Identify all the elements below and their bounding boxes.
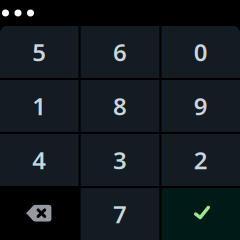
button[interactable]: 4 [0,134,79,186]
button[interactable]: 2 [161,134,240,186]
button[interactable]: 9 [161,80,240,132]
button[interactable]: 0 [161,26,240,78]
button[interactable]: 5 [0,26,79,78]
staticText: 0 [194,36,208,68]
staticText: 7 [113,198,127,230]
staticText: 6 [113,36,127,68]
staticText: 9 [194,90,208,122]
staticText: 8 [113,90,127,122]
staticText: 5 [32,36,46,68]
button[interactable]: 8 [81,80,159,132]
button[interactable]: 6 [81,26,159,78]
staticText: 3 [113,144,127,176]
button[interactable]: Delete [0,188,79,240]
staticText: 4 [32,144,46,176]
button[interactable]: Confirm [161,188,240,240]
button[interactable]: 1 [0,80,79,132]
staticText: 1 [32,90,46,122]
staticText: 2 [194,144,208,176]
button[interactable]: 7 [81,188,159,240]
button[interactable]: 3 [81,134,159,186]
